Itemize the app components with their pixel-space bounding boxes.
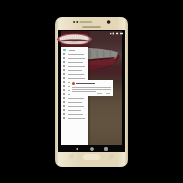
button[interactable]	[61, 88, 88, 92]
button[interactable]: Home button	[83, 154, 100, 160]
button[interactable]	[61, 48, 88, 52]
button[interactable]: Recent apps	[103, 146, 109, 152]
button[interactable]	[61, 76, 88, 80]
button[interactable]	[61, 80, 88, 84]
button[interactable]	[61, 64, 88, 68]
button[interactable]	[61, 112, 88, 116]
button[interactable]	[61, 52, 88, 56]
button[interactable]	[61, 68, 88, 72]
button[interactable]	[61, 92, 88, 96]
button[interactable]	[96, 92, 103, 95]
button[interactable]	[105, 92, 111, 95]
button[interactable]	[61, 108, 88, 112]
button[interactable]	[61, 96, 88, 100]
button[interactable]: Home	[89, 146, 95, 152]
button[interactable]	[61, 116, 88, 120]
button[interactable]	[61, 72, 88, 76]
button[interactable]: Back	[74, 146, 80, 152]
button[interactable]	[61, 100, 88, 104]
button[interactable]	[61, 104, 88, 108]
button[interactable]	[61, 56, 88, 60]
button[interactable]	[61, 84, 88, 88]
button[interactable]	[61, 60, 88, 64]
